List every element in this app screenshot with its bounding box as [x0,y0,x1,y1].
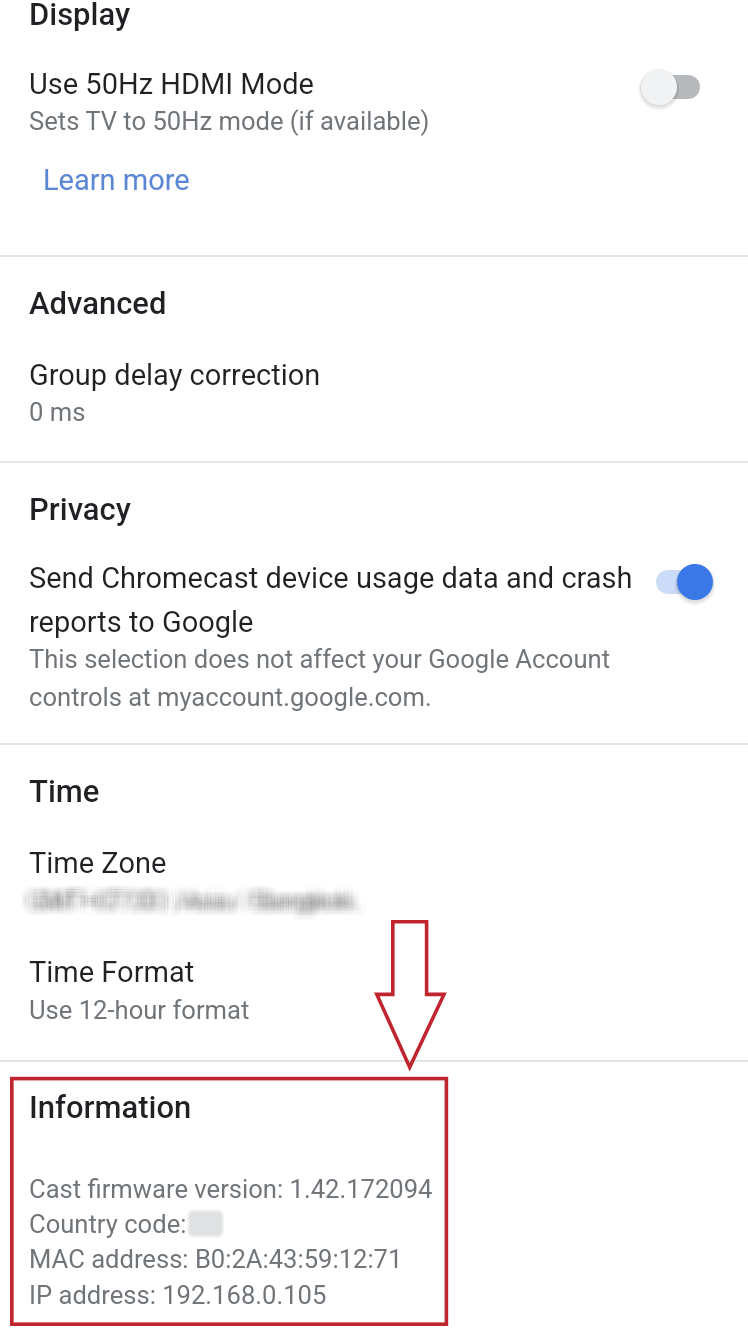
staticText: GMT+07:00 | Asia / Bangkok. [36,883,367,913]
staticText: GMT+07:00 | Asia / Bangkok. [26,889,357,919]
staticText: GMT+07:00 | Asia / Bangkok. [31,881,362,911]
button[interactable] [28,160,198,204]
staticText: GMT+07:00 | Asia / Bangkok. [33,887,364,917]
staticText: GMT+07:00 | Asia / Bangkok. [30,889,361,919]
staticText: GMT+07:00 | Asia / Bangkok. [25,887,356,917]
staticText: GMT+07:00 | Asia / Bangkok. [28,884,359,914]
staticText: GMT+07:00 | Asia / Bangkok. [38,889,369,919]
staticText: Send Chromecast device usage data and cr… [29,561,641,639]
staticText: GMT+07:00 | Asia / Bangkok. [30,891,361,921]
staticText: GMT+07:00 | Asia / Bangkok. [23,891,354,921]
staticText: GMT+07:00 | Asia / Bangkok. [31,887,362,917]
staticText: GMT+07:00 | Asia / Bangkok. [28,887,359,917]
staticText: GMT+07:00 | Asia / Bangkok. [22,889,353,919]
staticText: 0 ms [29,397,86,427]
staticText: GMT+07:00 | Asia / Bangkok. [30,884,361,914]
staticText: GMT+07:00 | Asia / Bangkok. [36,884,367,914]
staticText: GMT+07:00 | Asia / Bangkok. [22,881,353,911]
staticText: GMT+07:00 | Asia / Bangkok. [20,881,351,911]
button[interactable]: Switch off [638,59,718,115]
staticText: GMT+07:00 | Asia / Bangkok. [34,889,365,919]
staticText: GMT+07:00 | Asia / Bangkok. [36,887,367,917]
staticText: GMT+07:00 | Asia / Bangkok. [28,889,359,919]
staticText: GMT+07:00 | Asia / Bangkok. [26,891,357,921]
staticText: GMT+07:00 | Asia / Bangkok. [33,884,364,914]
staticText: GMT+07:00 | Asia / Bangkok. [36,881,367,911]
staticText: GMT+07:00 | Asia / Bangkok. [28,891,359,921]
staticText: GMT+07:00 | Asia / Bangkok. [36,891,367,921]
staticText: GMT+07:00 | Asia / Bangkok. [33,891,364,921]
staticText: GMT+07:00 | Asia / Bangkok. [26,883,357,913]
staticText: GMT+07:00 | Asia / Bangkok. [22,884,353,914]
staticText: Use 12-hour format [29,995,250,1025]
staticText: GMT+07:00 | Asia / Bangkok. [25,884,356,914]
staticText: GMT+07:00 | Asia / Bangkok. [22,891,353,921]
staticText: GMT+07:00 | Asia / Bangkok. [33,881,364,911]
button[interactable] [0,548,748,724]
staticText: Privacy [29,491,131,527]
button[interactable] [0,932,748,1024]
staticText: Country code: [29,1209,187,1239]
button[interactable] [0,48,748,143]
staticText: GMT+07:00 | Asia / Bangkok. [34,881,365,911]
staticText: GMT+07:00 | Asia / Bangkok. [30,881,361,911]
staticText: Information [29,1089,192,1125]
staticText: GMT+07:00 | Asia / Bangkok. [38,881,369,911]
staticText: GMT+07:00 | Asia / Bangkok. [23,889,354,919]
staticText: GMT+07:00 | Asia / Bangkok. [36,889,367,919]
staticText: GMT+07:00 | Asia / Bangkok. [26,887,357,917]
staticText: GMT+07:00 | Asia / Bangkok. [28,881,359,911]
staticText: GMT+07:00 | Asia / Bangkok. [30,883,361,913]
staticText: Group delay correction [29,358,321,392]
staticText: GMT+07:00 | Asia / Bangkok. [38,891,369,921]
staticText: GMT+07:00 | Asia / Bangkok. [25,886,356,916]
staticText: GMT+07:00 | Asia / Bangkok. [23,887,354,917]
staticText: GMT+07:00 | Asia / Bangkok. [31,889,362,919]
staticText: GMT+07:00 | Asia / Bangkok. [22,887,353,917]
button[interactable] [0,342,748,436]
staticText: GMT+07:00 | Asia / Bangkok. [20,886,351,916]
staticText: GMT+07:00 | Asia / Bangkok. [30,886,361,916]
staticText: GMT+07:00 | Asia / Bangkok. [33,889,364,919]
button[interactable] [0,828,748,920]
staticText: GMT+07:00 | Asia / Bangkok. [25,881,356,911]
staticText: GMT+07:00 | Asia / Bangkok. [22,883,353,913]
staticText: GMT+07:00 | Asia / Bangkok. [22,886,353,916]
staticText: GMT+07:00 | Asia / Bangkok. [34,884,365,914]
staticText: GMT+07:00 | Asia / Bangkok. [23,883,354,913]
staticText: GMT+07:00 | Asia / Bangkok. [20,884,351,914]
staticText: GMT+07:00 | Asia / Bangkok. [26,881,357,911]
staticText: GMT+07:00 | Asia / Bangkok. [33,883,364,913]
staticText: GMT+07:00 | Asia / Bangkok. [31,886,362,916]
staticText: GMT+07:00 | Asia / Bangkok. [25,883,356,913]
staticText: Advanced [29,285,167,321]
staticText: GMT+07:00 | Asia / Bangkok. [26,886,357,916]
staticText: MAC address: B0:2A:43:59:12:71 [29,1244,403,1274]
staticText: Sets TV to 50Hz mode (if available) [29,106,430,136]
staticText: GMT+07:00 | Asia / Bangkok. [34,886,365,916]
staticText: GMT+07:00 | Asia / Bangkok. [38,883,369,913]
staticText: GMT+07:00 | Asia / Bangkok. [34,887,365,917]
staticText: This selection does not affect your Goog… [29,644,629,712]
staticText: GMT+07:00 | Asia / Bangkok. [33,886,364,916]
staticText: GMT+07:00 | Asia / Bangkok. [30,887,361,917]
staticText: GMT+07:00 | Asia / Bangkok. [20,887,351,917]
staticText: GMT+07:00 | Asia / Bangkok. [31,883,362,913]
staticText: GMT+07:00 | Asia / Bangkok. [23,886,354,916]
staticText: Learn more [43,163,190,197]
button[interactable]: Switch on [638,554,718,610]
staticText: GMT+07:00 | Asia / Bangkok. [26,884,357,914]
staticText: Time [29,773,100,809]
staticText: GMT+07:00 | Asia / Bangkok. [23,881,354,911]
staticText: Use 50Hz HDMI Mode [29,67,314,101]
staticText: IP address: 192.168.0.105 [29,1280,327,1310]
staticText: Time Format [29,955,195,989]
staticText: Time Zone [29,846,167,880]
staticText: GMT+07:00 | Asia / Bangkok. [23,884,354,914]
staticText: GMT+07:00 | Asia / Bangkok. [25,891,356,921]
staticText: GMT+07:00 | Asia / Bangkok. [25,889,356,919]
staticText: GMT+07:00 | Asia / Bangkok. [31,884,362,914]
staticText: Display [29,0,131,32]
staticText: GMT+07:00 | Asia / Bangkok. [38,884,369,914]
staticText: GMT+07:00 | Asia / Bangkok. [20,891,351,921]
